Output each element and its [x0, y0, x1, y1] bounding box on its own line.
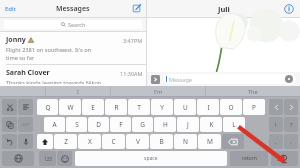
- button[interactable]: Comma: [269, 134, 283, 149]
- staticText: !: [275, 121, 277, 129]
- staticText: X: [88, 137, 92, 146]
- button[interactable]: Jonny: [0, 32, 146, 64]
- staticText: ,: [275, 138, 277, 146]
- button[interactable]: Next: [284, 99, 298, 115]
- button[interactable]: V: [126, 134, 149, 149]
- button[interactable]: Question mark: [284, 117, 298, 132]
- staticText: A: [52, 120, 57, 129]
- button[interactable]: Details: [284, 4, 294, 14]
- staticText: Juli: [218, 4, 230, 14]
- staticText: W: [67, 103, 74, 112]
- staticText: I: [77, 88, 79, 95]
- button[interactable]: U: [174, 99, 196, 115]
- staticText: Sarah Clover: [6, 68, 50, 78]
- staticText: Jonny: [6, 35, 26, 45]
- button[interactable]: N: [174, 134, 197, 149]
- staticText: F: [119, 120, 123, 129]
- button[interactable]: Undo: [2, 134, 17, 149]
- button[interactable]: Show attachments: [151, 75, 160, 84]
- staticText: C: [111, 137, 116, 146]
- staticText: J: [187, 120, 189, 129]
- button[interactable]: Text format: [18, 99, 33, 115]
- button[interactable]: 123: [39, 151, 56, 166]
- button[interactable]: Z: [54, 134, 77, 149]
- staticText: R: [114, 103, 119, 112]
- staticText: U: [183, 103, 188, 112]
- button[interactable]: Edit: [0, 3, 21, 15]
- staticText: Z: [64, 137, 68, 146]
- button[interactable]: T: [128, 99, 150, 115]
- button[interactable]: M: [198, 134, 221, 149]
- button[interactable]: P: [243, 99, 265, 115]
- staticText: Q: [45, 103, 51, 112]
- button[interactable]: Shift: [37, 134, 53, 149]
- staticText: 11:30AM: [120, 70, 143, 77]
- button[interactable]: Delete: [222, 134, 244, 149]
- button[interactable]: W: [59, 99, 81, 115]
- staticText: space: [144, 155, 158, 162]
- staticText: G: [140, 120, 145, 129]
- staticText: H: [163, 120, 168, 129]
- staticText: L: [232, 120, 236, 129]
- staticText: S: [75, 120, 79, 129]
- button[interactable]: O: [220, 99, 242, 115]
- button[interactable]: Sarah Clover: [0, 65, 146, 86]
- button[interactable]: Emoji: [57, 151, 72, 166]
- button[interactable]: R: [105, 99, 127, 115]
- button[interactable]: F: [110, 117, 131, 132]
- staticText: I'm: [154, 88, 163, 95]
- button[interactable]: A: [44, 117, 65, 132]
- button[interactable]: S: [66, 117, 87, 132]
- button[interactable]: Y: [151, 99, 173, 115]
- staticText: K: [209, 120, 214, 129]
- staticText: B: [159, 137, 164, 146]
- button[interactable]: D: [88, 117, 109, 132]
- staticText: T: [137, 103, 141, 112]
- staticText: I: [207, 103, 210, 112]
- staticText: time so far: [6, 54, 35, 62]
- button[interactable]: X: [78, 134, 101, 149]
- staticText: ?: [290, 121, 293, 129]
- staticText: O: [228, 103, 234, 112]
- staticText: .: [290, 138, 292, 146]
- button[interactable]: return: [230, 151, 268, 166]
- button[interactable]: E: [82, 99, 104, 115]
- button[interactable]: Hide keyboard: [271, 151, 298, 166]
- staticText: V: [136, 137, 140, 146]
- staticText: Flight 2381 on southwest. It's on: [6, 46, 92, 54]
- staticText: D: [96, 120, 101, 129]
- button[interactable]: Previous: [269, 99, 283, 115]
- staticText: Y: [160, 103, 164, 112]
- button[interactable]: space: [75, 151, 227, 166]
- button[interactable]: J: [177, 117, 199, 132]
- button[interactable]: Keyboard settings: [2, 151, 34, 166]
- button[interactable]: Exclamation mark: [269, 117, 283, 132]
- button[interactable]: Message: [163, 74, 296, 84]
- button[interactable]: Cut: [2, 99, 17, 115]
- button[interactable]: Copy: [2, 117, 17, 132]
- staticText: Search: [68, 21, 86, 28]
- button[interactable]: H: [154, 117, 176, 132]
- staticText: return: [242, 155, 257, 162]
- button[interactable]: K: [200, 117, 222, 132]
- button[interactable]: B: [150, 134, 173, 149]
- button[interactable]: L: [223, 117, 245, 132]
- staticText: Edit: [5, 5, 16, 13]
- button[interactable]: Bold italic underline: [18, 117, 33, 132]
- button[interactable]: Search: [4, 20, 142, 29]
- button[interactable]: Record audio: [285, 75, 293, 83]
- staticText: N: [183, 137, 188, 146]
- button[interactable]: Q: [37, 99, 58, 115]
- button[interactable]: I: [197, 99, 219, 115]
- button[interactable]: Dictation: [18, 134, 33, 149]
- staticText: 3:47PM: [123, 37, 143, 44]
- staticText: BIU: [22, 122, 30, 128]
- button[interactable]: C: [102, 134, 125, 149]
- staticText: 123: [44, 156, 52, 162]
- staticText: P: [252, 103, 256, 112]
- button[interactable]: New message: [131, 3, 142, 14]
- button[interactable]: G: [132, 117, 153, 132]
- staticText: E: [91, 103, 95, 112]
- staticText: Message: [169, 76, 192, 83]
